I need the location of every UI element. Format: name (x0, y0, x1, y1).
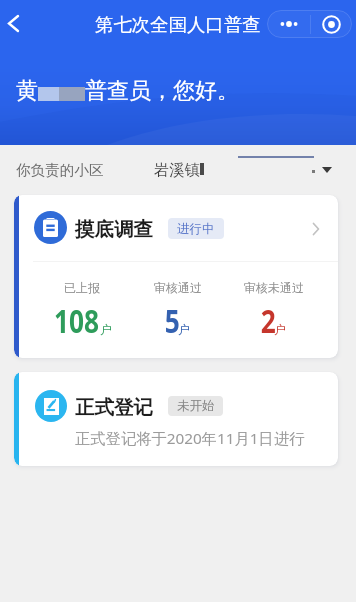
staticText: 户 (100, 322, 112, 337)
staticText: 岩溪镇 (154, 160, 200, 179)
button[interactable]: More options (267, 10, 310, 38)
staticText: 黄 (16, 77, 38, 105)
staticText: 5 (165, 299, 180, 343)
staticText: 正式登记 (75, 395, 153, 420)
staticText: 审核通过 (154, 280, 202, 295)
staticText: 普查员，您好。 (85, 77, 239, 105)
staticText: 2 (261, 299, 276, 343)
button[interactable]: 你负责的小区 (0, 145, 356, 195)
staticText: 第七次全国人口普查 (95, 13, 261, 36)
button[interactable]: 摸底调查 (14, 195, 338, 358)
staticText: 户 (178, 322, 190, 337)
button[interactable]: Back (0, 10, 26, 36)
button[interactable]: 正式登记 (14, 372, 338, 466)
staticText: 正式登记将于2020年11月1日进行 (75, 428, 305, 449)
staticText: 未开始 (177, 398, 215, 414)
staticText: 你负责的小区 (16, 161, 104, 179)
button[interactable]: Close mini program (311, 10, 352, 38)
staticText: 户 (274, 322, 286, 337)
staticText: 审核未通过 (244, 280, 304, 295)
staticText: 108 (54, 299, 99, 343)
staticText: 已上报 (64, 280, 100, 295)
staticText: 摸底调查 (75, 217, 153, 242)
staticText: 进行中 (177, 221, 215, 237)
